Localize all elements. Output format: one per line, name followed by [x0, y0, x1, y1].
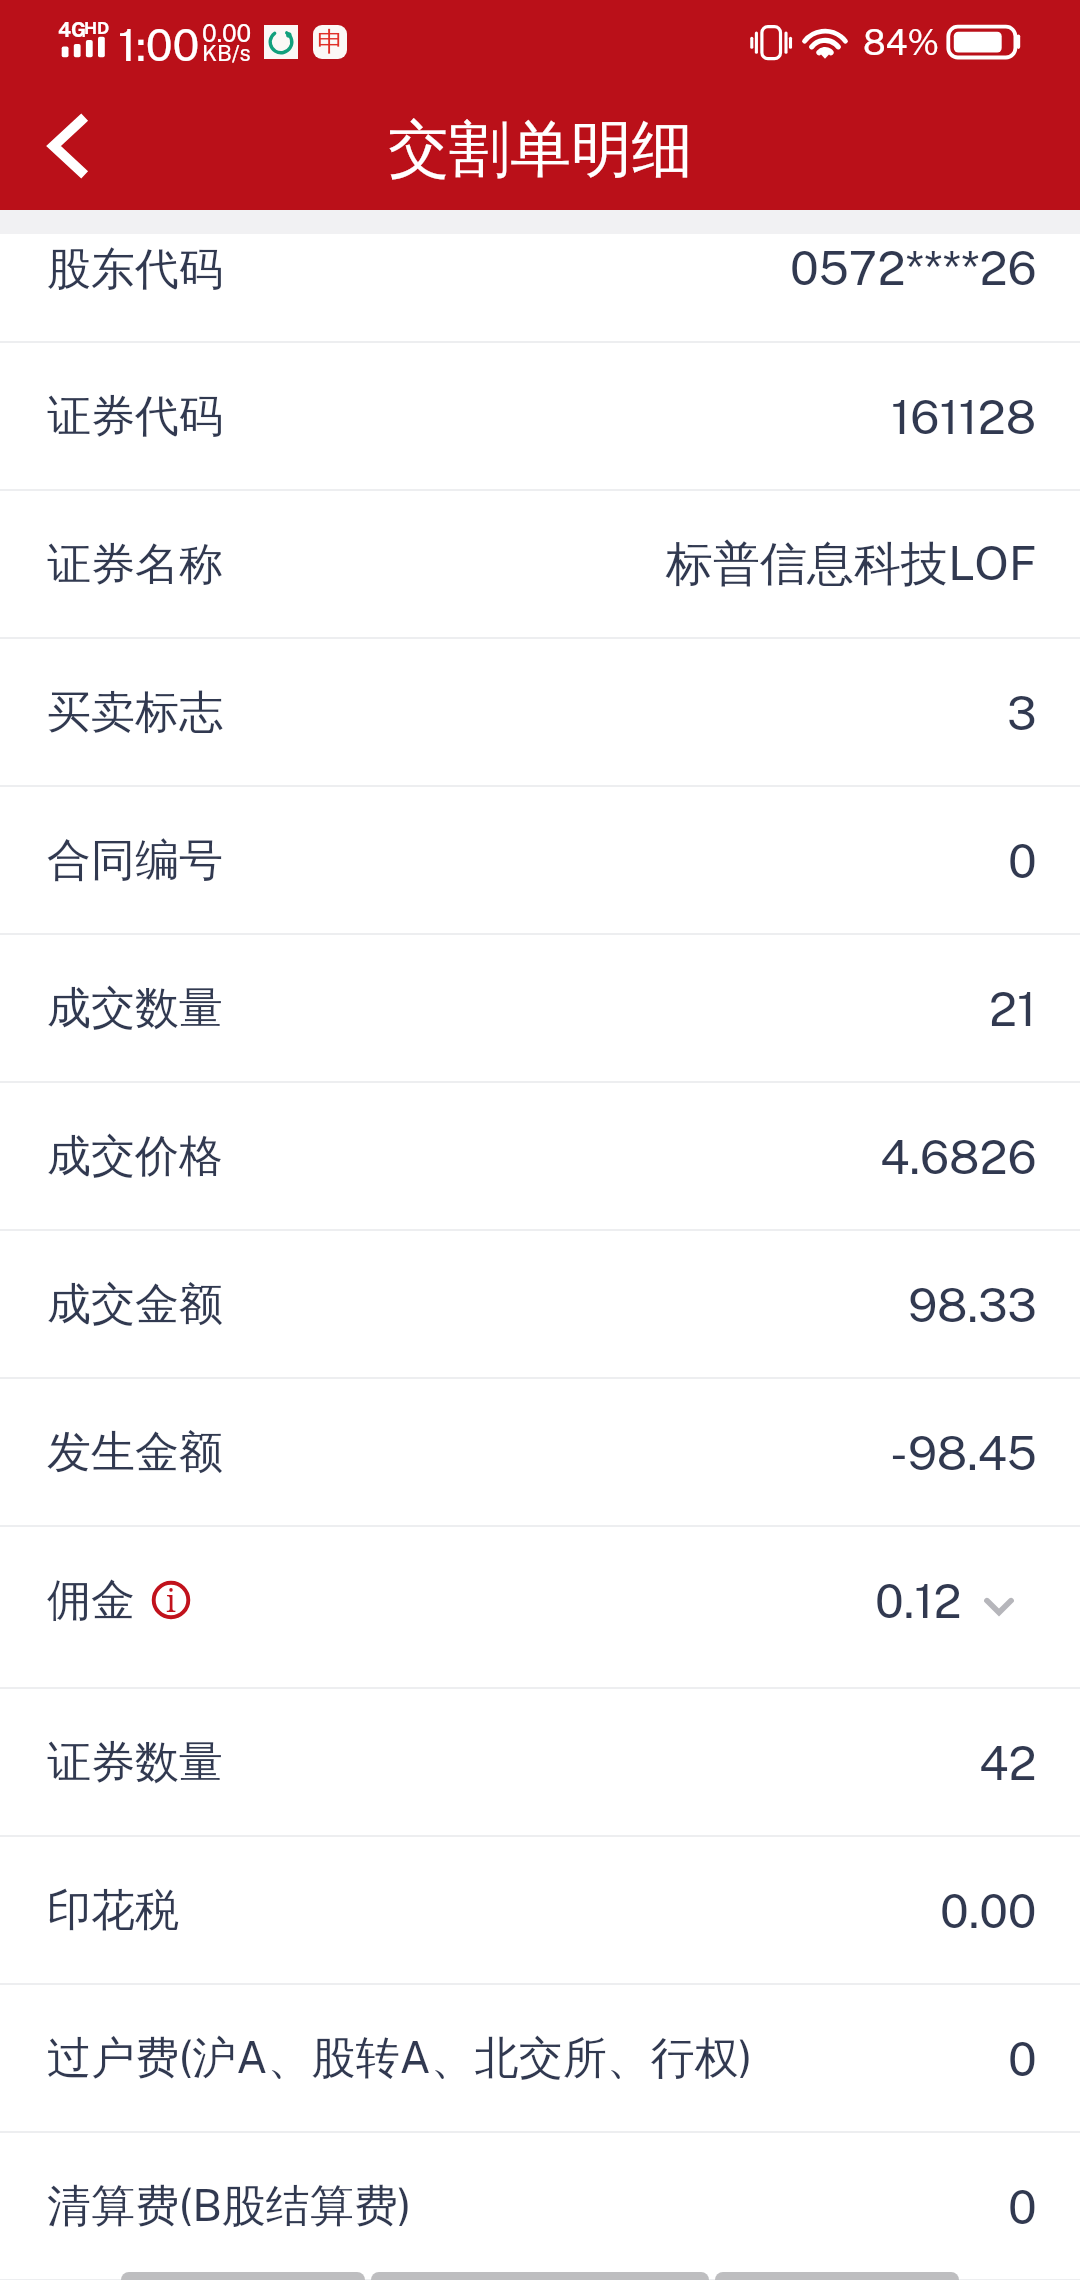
staticText: 过户费(沪A、股转A、北交所、行权) — [47, 2031, 753, 2086]
button[interactable]: 印花税 — [0, 1837, 1080, 1983]
staticText: 合同编号 — [47, 833, 223, 888]
button[interactable]: Back — [25, 98, 121, 194]
staticText: 0 — [1008, 2179, 1037, 2234]
staticText: i — [166, 1579, 176, 1619]
staticText: 42 — [979, 1735, 1037, 1790]
staticText: 4.6826 — [880, 1129, 1037, 1184]
button[interactable]: 证券数量 — [0, 1689, 1080, 1835]
button[interactable]: 证券名称 — [0, 491, 1080, 637]
staticText: 98.33 — [908, 1277, 1037, 1332]
staticText: 成交数量 — [47, 981, 223, 1036]
staticText: 佣金 — [47, 1573, 135, 1628]
staticText: 证券代码 — [47, 389, 223, 444]
button[interactable]: 成交数量 — [0, 935, 1080, 1081]
staticText: 0.00 — [202, 19, 252, 47]
staticText: 买卖标志 — [47, 685, 223, 740]
button[interactable]: 成交价格 — [0, 1083, 1080, 1229]
staticText: 161128 — [891, 389, 1037, 444]
staticText: 4G — [58, 18, 87, 42]
staticText: 3 — [1007, 685, 1037, 740]
staticText: 成交价格 — [47, 1129, 223, 1184]
staticText: 0.12 — [875, 1573, 962, 1628]
button[interactable]: 股东代码 — [0, 234, 1080, 341]
staticText: 21 — [989, 981, 1037, 1036]
staticText: 证券名称 — [47, 537, 223, 592]
staticText: -98.45 — [890, 1425, 1037, 1480]
button[interactable]: Home — [371, 2272, 709, 2280]
button[interactable]: 买卖标志 — [0, 639, 1080, 785]
staticText: 0 — [1008, 2031, 1037, 2086]
staticText: 申 — [317, 25, 344, 59]
staticText: 0572****26 — [790, 240, 1037, 295]
button[interactable]: 合同编号 — [0, 787, 1080, 933]
staticText: 股东代码 — [47, 242, 223, 297]
staticText: 证券数量 — [47, 1735, 223, 1790]
staticText: 标普信息科技LOF — [666, 535, 1037, 594]
staticText: 清算费(B股结算费) — [47, 2179, 412, 2234]
staticText: HD — [84, 18, 110, 38]
staticText: 0 — [1008, 833, 1037, 888]
button[interactable]: Recents — [715, 2272, 959, 2280]
staticText: 交割单明细 — [388, 111, 693, 188]
staticText: KB/s — [202, 40, 251, 66]
button[interactable]: Expand commission detail — [984, 1580, 1014, 1620]
button[interactable]: 成交金额 — [0, 1231, 1080, 1377]
button[interactable]: 过户费(沪A、股转A、北交所、行权) — [0, 1985, 1080, 2131]
button[interactable]: Back — [121, 2272, 365, 2280]
button[interactable]: 佣金 — [0, 1527, 1080, 1687]
button[interactable]: 清算费(B股结算费) — [0, 2133, 1080, 2279]
staticText: 印花税 — [47, 1883, 179, 1938]
staticText: 成交金额 — [47, 1277, 223, 1332]
button[interactable]: 证券代码 — [0, 343, 1080, 489]
staticText: 84% — [863, 22, 940, 63]
button[interactable]: 发生金额 — [0, 1379, 1080, 1525]
staticText: 0.00 — [940, 1883, 1037, 1938]
staticText: 1:00 — [118, 19, 200, 71]
staticText: 发生金额 — [47, 1425, 223, 1480]
